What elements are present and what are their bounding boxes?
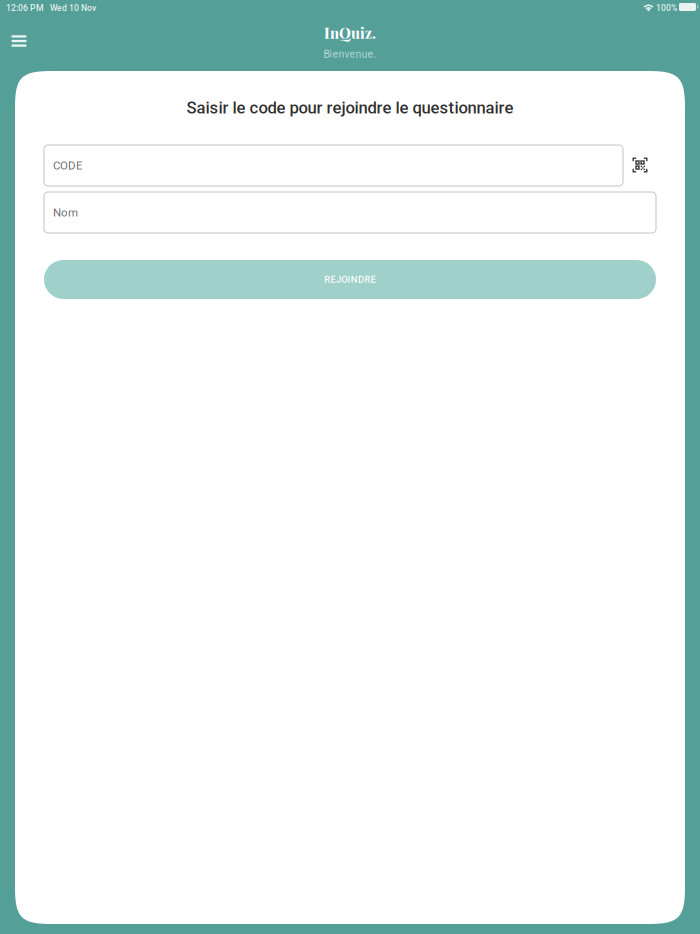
button[interactable]: Menu bbox=[4, 26, 34, 56]
staticText: Saisir le code pour rejoindre le questio… bbox=[186, 98, 513, 117]
staticText: InQuiz. bbox=[324, 23, 376, 43]
button[interactable]: Scan QR code bbox=[623, 145, 657, 185]
staticText: 100% bbox=[656, 3, 677, 13]
staticText: 12:06 PM Wed 10 Nov bbox=[6, 3, 96, 13]
staticText: REJOINDRE bbox=[324, 274, 376, 285]
staticText: Bienvenue. bbox=[323, 48, 376, 60]
staticText: Nom bbox=[53, 206, 78, 219]
staticText: CODE bbox=[53, 159, 83, 172]
button[interactable]: REJOINDRE bbox=[44, 260, 656, 299]
